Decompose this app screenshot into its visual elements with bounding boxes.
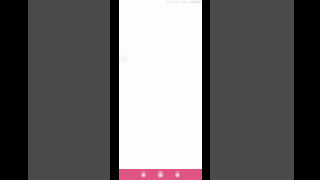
button[interactable]: Home: [135, 169, 152, 180]
button[interactable]: Search: [152, 169, 169, 180]
button[interactable]: Profile: [169, 169, 186, 180]
